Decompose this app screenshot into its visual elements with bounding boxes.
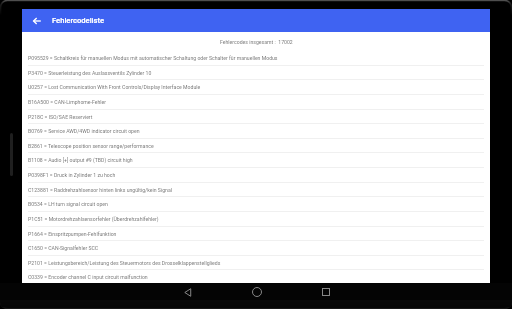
button[interactable]: C1650 = CAN-Signalfehler SCC (22, 240, 490, 255)
button[interactable]: Recent apps (291, 283, 360, 301)
button[interactable]: C0339 = Encoder channel C input circuit … (22, 269, 490, 284)
button[interactable]: P1C51 = Motordrehzahlsensorfehler (Überd… (22, 211, 490, 226)
button[interactable]: P1664 = Einspritzpumpen-Fehlfunktion (22, 226, 490, 241)
staticText: P2101 = Leistungsbereich/Leistung des St… (28, 260, 221, 266)
button[interactable]: U0257 = Lost Communication With Front Co… (22, 79, 490, 94)
button[interactable]: B16A500 = CAN-Limphome-Fehler (22, 94, 490, 109)
button[interactable]: P2101 = Leistungsbereich/Leistung des St… (22, 255, 490, 270)
button[interactable]: Back (22, 9, 52, 32)
staticText: C123881 = Raddrehzahlsensor hinten links… (28, 187, 172, 193)
staticText: P095529 = Schaltkreis für manuellen Modu… (28, 55, 278, 61)
staticText: Fehlercodeliste (52, 16, 105, 25)
staticText: U0257 = Lost Communication With Front Co… (28, 84, 201, 90)
staticText: B2861 = Telescope position sensor range/… (28, 143, 154, 149)
staticText: P218C = ISO/SAE Reserviert (28, 114, 93, 120)
button[interactable]: B1108 = Audio [+] output #9 (TBD) circui… (22, 152, 490, 167)
button[interactable]: Back (153, 283, 222, 301)
staticText: C0339 = Encoder channel C input circuit … (28, 274, 148, 280)
button[interactable]: B2861 = Telescope position sensor range/… (22, 138, 490, 153)
staticText: P3470 = Steuerleistung des Auslassventil… (28, 70, 152, 76)
staticText: B0769 = Service AWD/4WD indicator circui… (28, 128, 140, 134)
staticText: B0534 = LH turn signal circuit open (28, 201, 108, 207)
button[interactable]: C123881 = Raddrehzahlsensor hinten links… (22, 182, 490, 197)
button[interactable]: P0398F1 = Druck in Zylinder 1 zu hoch (22, 167, 490, 182)
button[interactable]: P3470 = Steuerleistung des Auslassventil… (22, 65, 490, 80)
button[interactable]: B0534 = LH turn signal circuit open (22, 196, 490, 211)
staticText: P0398F1 = Druck in Zylinder 1 zu hoch (28, 172, 116, 178)
staticText: P1664 = Einspritzpumpen-Fehlfunktion (28, 231, 117, 237)
staticText: B1108 = Audio [+] output #9 (TBD) circui… (28, 157, 133, 163)
button[interactable]: P095529 = Schaltkreis für manuellen Modu… (22, 50, 490, 65)
staticText: C1650 = CAN-Signalfehler SCC (28, 245, 99, 251)
staticText: P1C51 = Motordrehzahlsensorfehler (Überd… (28, 216, 159, 222)
button[interactable]: B0769 = Service AWD/4WD indicator circui… (22, 123, 490, 138)
button[interactable]: Home (222, 283, 291, 301)
staticText: B16A500 = CAN-Limphome-Fehler (28, 99, 107, 105)
staticText: Fehlercodes insgesamt : 17002 (220, 39, 293, 45)
button[interactable]: P218C = ISO/SAE Reserviert (22, 109, 490, 124)
